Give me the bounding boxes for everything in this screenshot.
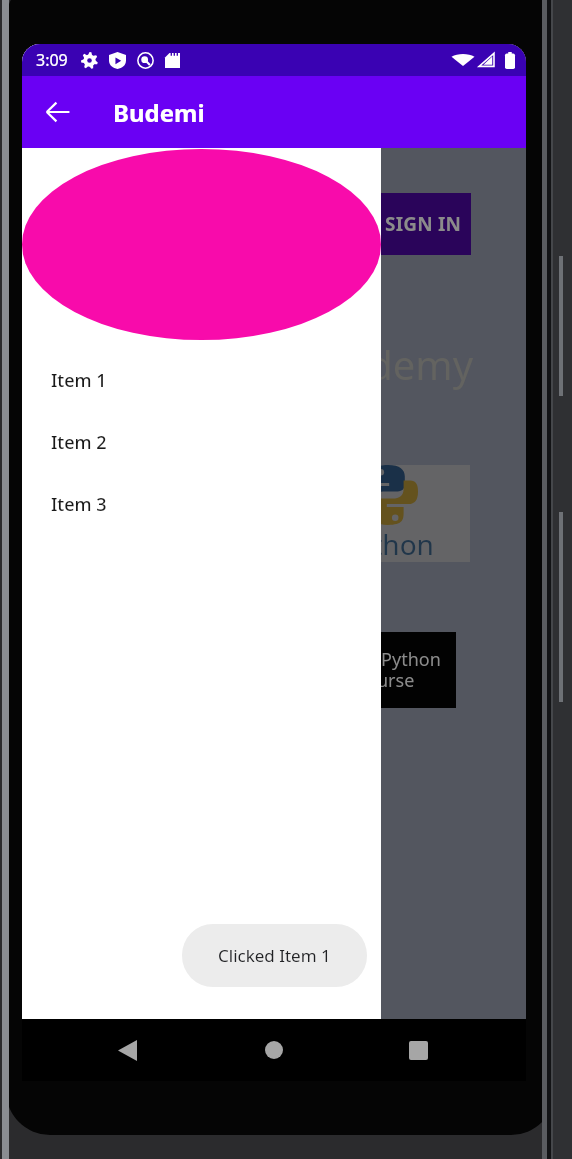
staticText: Item 1 xyxy=(51,368,107,393)
staticText: Clicked Item 1 xyxy=(218,944,331,967)
button[interactable]: Recent apps xyxy=(394,1026,442,1074)
button[interactable]: Item 2 xyxy=(22,411,381,473)
button[interactable]: SIGN IN xyxy=(312,193,471,255)
staticText: Academy xyxy=(301,337,474,391)
button[interactable]: Item 3 xyxy=(22,473,381,535)
staticText: Learn Python Course xyxy=(328,647,441,693)
staticText: Python xyxy=(341,525,434,562)
button[interactable]: Item 1 xyxy=(22,349,381,411)
staticText: 3:09 xyxy=(36,49,68,71)
staticText: Item 3 xyxy=(51,492,107,517)
button[interactable]: Home xyxy=(250,1026,298,1074)
button[interactable]: Back xyxy=(34,88,82,136)
staticText: SIGN IN xyxy=(385,211,462,237)
button[interactable]: Back xyxy=(103,1026,151,1074)
staticText: Item 2 xyxy=(51,430,107,455)
staticText: Budemi xyxy=(113,96,205,129)
